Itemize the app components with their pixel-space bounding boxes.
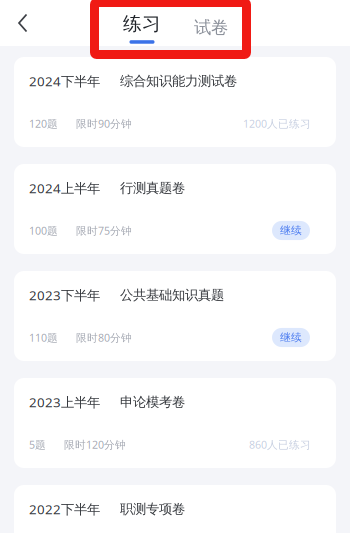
staticText: 2023上半年 [29, 393, 100, 411]
staticText: 2024上半年 [29, 179, 100, 197]
button[interactable]: 试卷 [181, 0, 241, 46]
staticText: 110题 [29, 330, 58, 345]
staticText: 5题 [29, 437, 46, 452]
staticText: 练习 [123, 12, 161, 35]
button[interactable]: 2023下半年 [14, 271, 336, 361]
button[interactable]: 继续 [272, 328, 310, 347]
staticText: 限时90分钟 [76, 116, 132, 131]
button[interactable]: 2024下半年 [14, 57, 336, 147]
staticText: 试卷 [194, 17, 228, 38]
staticText: 限时75分钟 [76, 223, 132, 238]
staticText: 行测真题卷 [120, 180, 185, 196]
staticText: 申论模考卷 [120, 394, 185, 410]
staticText: 继续 [280, 331, 302, 344]
staticText: 1200人已练习 [243, 116, 311, 131]
staticText: 100题 [29, 223, 58, 238]
staticText: 120题 [29, 116, 58, 131]
staticText: 2023下半年 [29, 286, 100, 304]
button[interactable]: 练习 [112, 0, 172, 46]
button[interactable]: 2022下半年 [14, 485, 336, 533]
button[interactable]: 继续 [272, 221, 310, 240]
button[interactable]: Back [0, 0, 46, 46]
staticText: 职测专项卷 [120, 501, 185, 517]
staticText: 2024下半年 [29, 72, 100, 90]
button[interactable]: 2023上半年 [14, 378, 336, 468]
staticText: 限时120分钟 [64, 437, 126, 452]
staticText: 限时80分钟 [76, 330, 132, 345]
staticText: 综合知识能力测试卷 [120, 73, 237, 89]
staticText: 公共基础知识真题 [120, 287, 224, 303]
button[interactable]: 2024上半年 [14, 164, 336, 254]
staticText: 860人已练习 [249, 437, 311, 452]
staticText: 2022下半年 [29, 500, 100, 518]
staticText: 继续 [280, 224, 302, 237]
